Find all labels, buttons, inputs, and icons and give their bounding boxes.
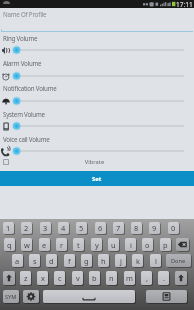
staticText: f [68,256,71,266]
button[interactable]: 8 [131,222,142,234]
staticText: p [163,240,168,250]
button[interactable]: a [12,254,23,267]
staticText: Name Of Profile [3,10,47,18]
button[interactable]: u [108,238,119,251]
button[interactable]: c [54,271,65,285]
staticText: s [33,256,37,266]
staticText: Voice call Volume [3,135,50,143]
button[interactable]: z [20,271,31,285]
button[interactable]: 4 [58,222,69,234]
staticText: h [101,256,106,266]
button[interactable]: 0 [168,222,179,234]
staticText: w [24,240,30,250]
staticText: q [7,240,12,250]
button[interactable]: , [141,271,152,285]
staticText: 17:11 [176,0,193,8]
button[interactable]: b [89,271,100,285]
staticText: n [109,273,114,283]
button[interactable] [0,43,194,57]
button[interactable]: y [91,238,102,251]
staticText: System Volume [3,110,45,118]
button[interactable]: h [98,254,109,267]
button[interactable] [0,69,194,83]
button[interactable]: o [142,238,153,251]
button[interactable]: Set [0,171,194,186]
staticText: b [92,273,97,283]
staticText: 9 [152,223,157,233]
button[interactable]: w [21,238,32,251]
button[interactable]: Keyboard settings [23,290,39,303]
button[interactable]: 3 [40,222,51,234]
staticText: m [126,273,133,283]
staticText: Alarm Volume [3,59,42,67]
button[interactable] [0,94,194,108]
staticText: 7 [116,223,121,233]
button[interactable]: p [160,238,171,251]
staticText: c [58,273,62,283]
staticText: i [130,240,132,250]
button[interactable]: SYM [3,290,19,303]
staticText: 0 [171,223,176,233]
button[interactable] [0,119,194,133]
button[interactable]: s [29,254,40,267]
staticText: k [136,256,140,266]
button[interactable]: r [56,238,67,251]
button[interactable]: i [125,238,136,251]
staticText: 8 [134,223,139,233]
staticText: , [146,273,148,283]
staticText: x [41,273,45,283]
button[interactable]: j [115,254,126,267]
button[interactable]: m [124,271,135,285]
staticText: 6 [98,223,103,233]
staticText: v [76,273,80,283]
button[interactable]: Change input method [146,290,187,303]
button[interactable]: 9 [149,222,160,234]
button[interactable] [0,144,194,158]
button[interactable]: q [4,238,15,251]
button[interactable]: 1 [3,222,14,234]
staticText: . [163,273,165,283]
staticText: t [77,240,80,250]
staticText: Vibrate [9,158,180,166]
staticText: 3 [43,223,48,233]
button[interactable]: Vibrate [0,156,194,168]
staticText: j [120,256,122,266]
staticText: a [15,256,20,266]
button[interactable]: v [72,271,83,285]
staticText: 5 [79,223,84,233]
button[interactable]: . [158,271,169,285]
button[interactable]: Done [166,254,191,267]
button[interactable]: d [46,254,57,267]
staticText: 4 [61,223,66,233]
staticText: 1 [6,223,11,233]
button[interactable]: Shift [3,271,15,285]
staticText: y [95,240,99,250]
staticText: e [42,240,47,250]
staticText: 2 [24,223,29,233]
button[interactable]: x [37,271,48,285]
staticText: u [111,240,116,250]
staticText: SYM [5,293,17,301]
button[interactable]: Backspace [176,238,189,251]
button[interactable]: 7 [113,222,124,234]
staticText: o [145,240,150,250]
button[interactable]: n [106,271,117,285]
button[interactable]: g [81,254,92,267]
staticText: z [24,273,28,283]
button[interactable]: e [39,238,50,251]
button[interactable]: 6 [95,222,106,234]
staticText: l [155,256,157,266]
button[interactable]: Space [43,290,135,303]
button[interactable]: 5 [76,222,87,234]
staticText: Notification Volume [3,84,57,92]
button[interactable]: Shift [175,271,187,285]
staticText: d [49,256,54,266]
button[interactable]: 2 [21,222,32,234]
staticText: g [84,256,89,266]
button[interactable]: k [132,254,143,267]
staticText: Done [171,257,186,265]
button[interactable]: t [73,238,84,251]
staticText: Ring Volume [3,34,38,42]
button[interactable]: l [150,254,161,267]
button[interactable]: f [64,254,75,267]
